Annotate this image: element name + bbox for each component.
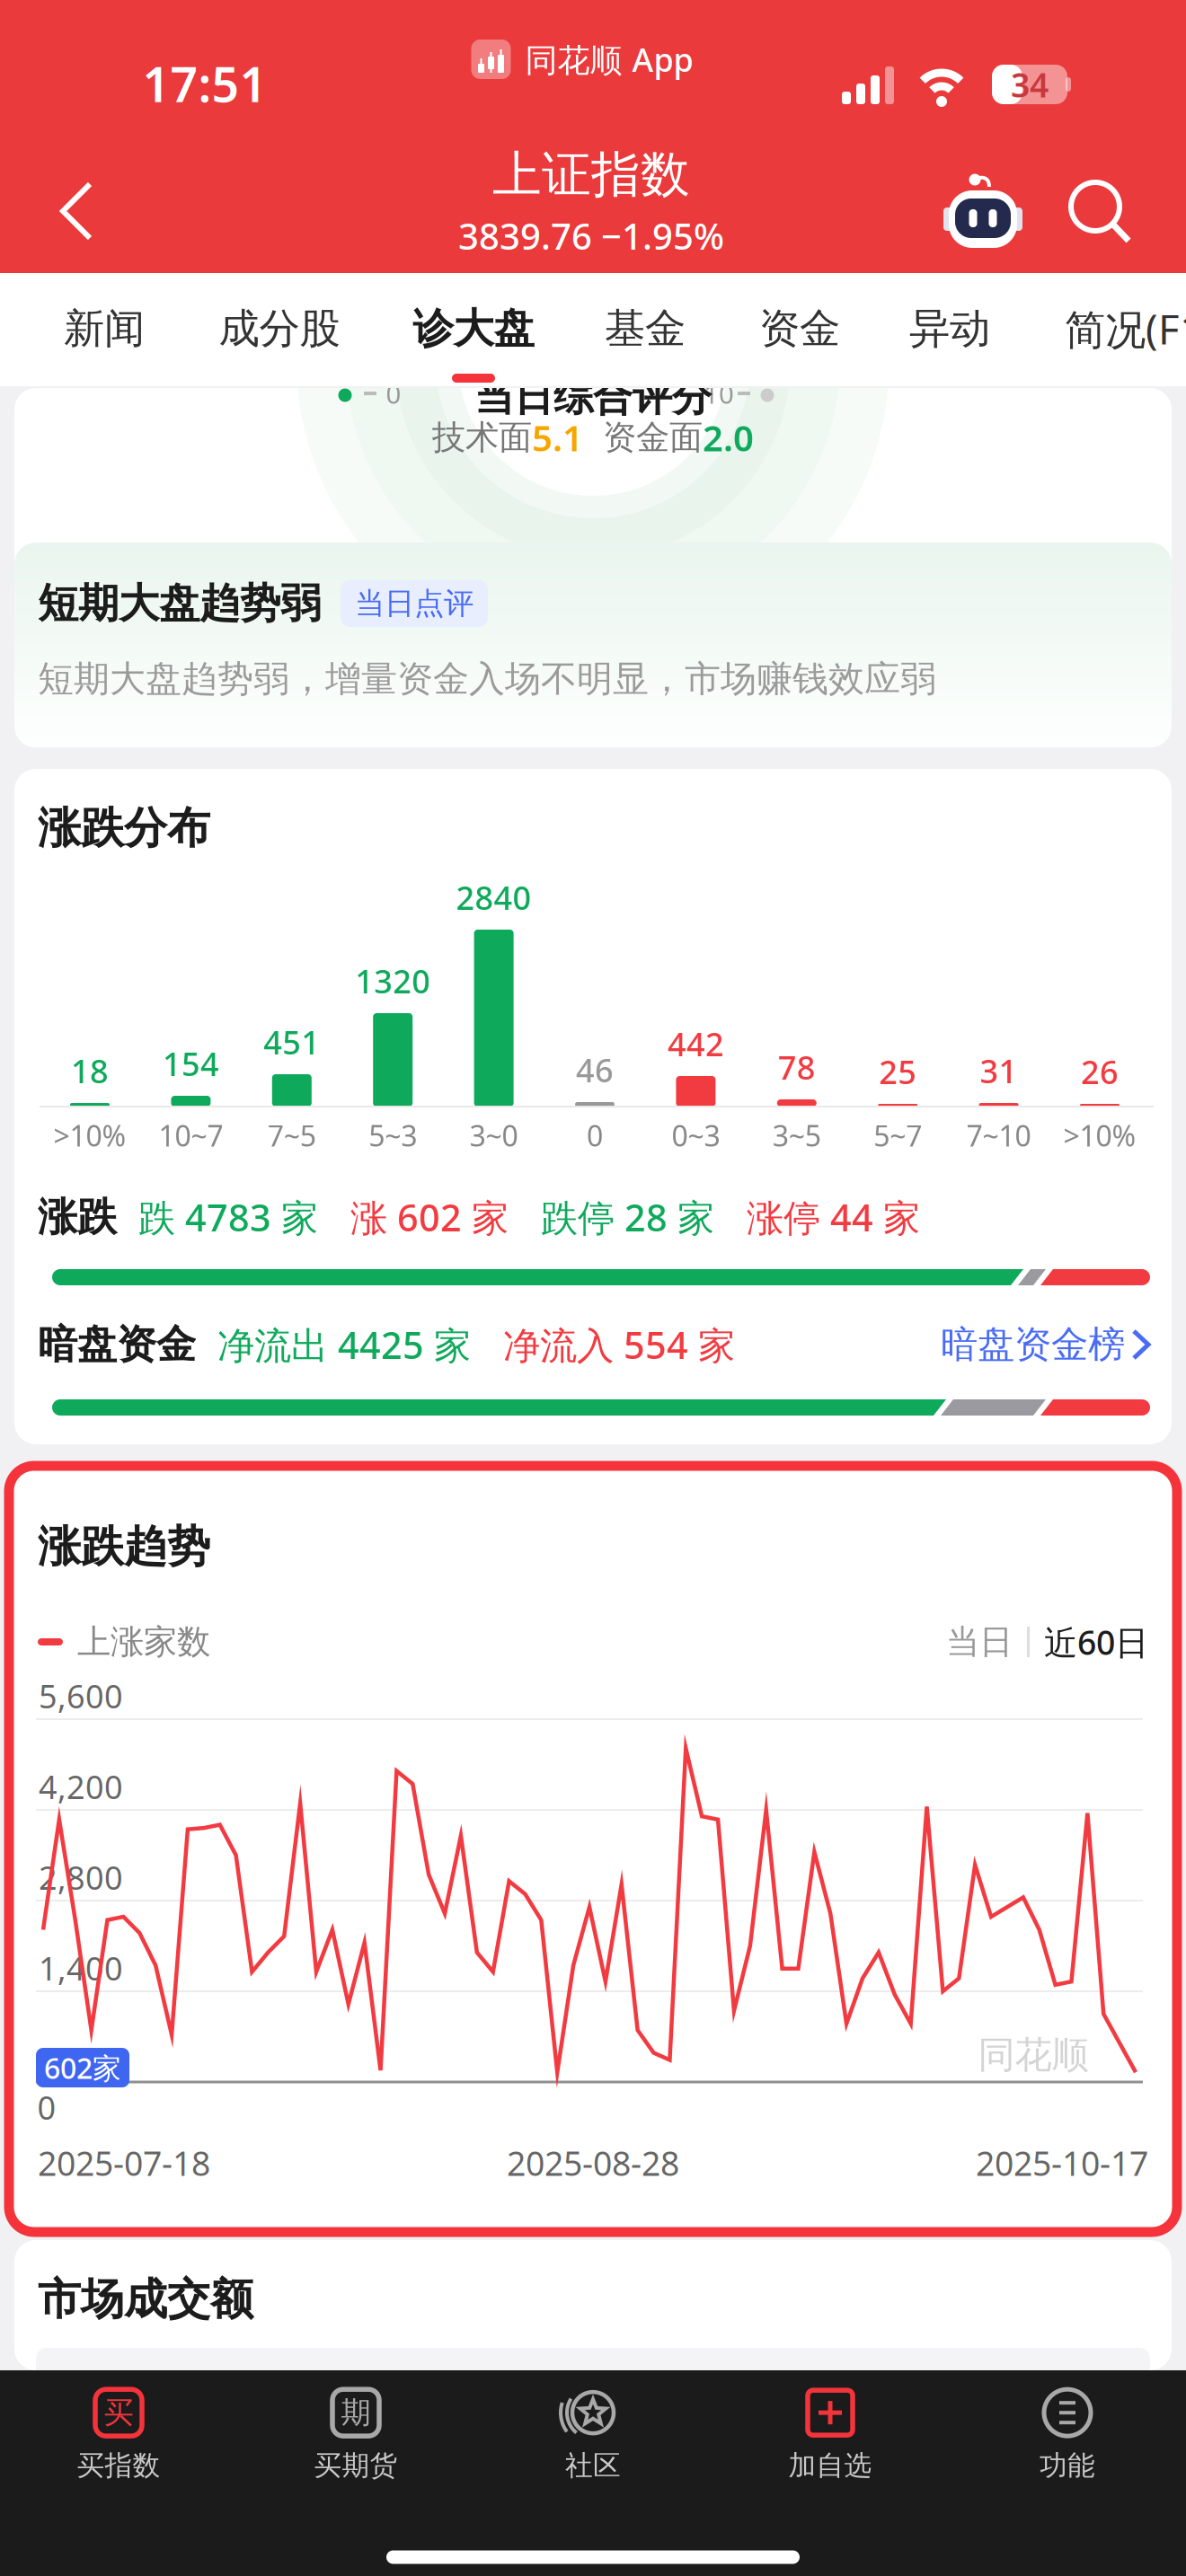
- staticText: 26: [1081, 1050, 1119, 1093]
- staticText: 净流出 4425 家: [196, 1320, 471, 1369]
- staticText: 3~5: [773, 1116, 821, 1154]
- button[interactable]: 期: [252, 2374, 459, 2496]
- staticText: 功能: [1040, 2449, 1095, 2482]
- staticText: 短期大盘趋势弱: [38, 579, 321, 629]
- staticText: 简况(F1: [1065, 302, 1186, 356]
- staticText: 1,400: [39, 1946, 123, 1989]
- staticText: 社区: [565, 2449, 621, 2482]
- staticText: 当日综合评分: [474, 373, 712, 421]
- staticText: 2,800: [39, 1856, 123, 1899]
- staticText: 市场成交额: [38, 2273, 253, 2326]
- staticText: 资金面: [583, 417, 703, 458]
- staticText: 上证指数: [492, 145, 690, 205]
- staticText: 17:51: [142, 52, 267, 115]
- button[interactable]: 当日: [946, 1621, 1013, 1663]
- staticText: 31: [980, 1049, 1018, 1092]
- button[interactable]: 加自选: [727, 2374, 934, 2496]
- staticText: 加自选: [788, 2449, 872, 2482]
- staticText: >10%: [1063, 1116, 1136, 1154]
- button[interactable]: 近60日: [1044, 1620, 1148, 1664]
- staticText: 7~5: [268, 1116, 316, 1154]
- staticText: 3839.76 −1.95%: [458, 212, 724, 260]
- staticText: 602家: [44, 2049, 121, 2087]
- staticText: 当日点评: [355, 585, 474, 622]
- button[interactable]: 暗盘资金榜: [941, 1322, 1148, 1367]
- staticText: 0: [386, 376, 401, 411]
- staticText: 10: [704, 376, 734, 411]
- staticText: 442: [667, 1022, 724, 1065]
- staticText: 暗盘资金榜: [941, 1322, 1125, 1367]
- staticText: 0: [587, 1116, 603, 1154]
- staticText: 买: [104, 2394, 133, 2431]
- staticText: 18: [71, 1049, 109, 1092]
- staticText: 新闻: [64, 304, 145, 354]
- staticText: 78: [778, 1046, 816, 1089]
- staticText: 净流入 554 家: [471, 1320, 735, 1369]
- staticText: 0: [37, 2086, 56, 2129]
- staticText: 2.0: [703, 414, 754, 461]
- button[interactable]: 买: [15, 2374, 222, 2496]
- staticText: 5.1: [532, 414, 583, 461]
- staticText: 451: [264, 1020, 320, 1063]
- staticText: 涨跌分布: [38, 802, 210, 855]
- staticText: 10~7: [158, 1116, 223, 1154]
- button[interactable]: 成分股: [219, 275, 340, 383]
- staticText: 2840: [456, 876, 532, 919]
- staticText: 25: [879, 1050, 917, 1093]
- staticText: 基金: [605, 304, 686, 354]
- staticText: 涨 602 家: [318, 1192, 509, 1242]
- button[interactable]: 当日点评: [341, 580, 488, 627]
- staticText: 技术面: [432, 417, 532, 458]
- staticText: 2025-08-28: [507, 2141, 679, 2185]
- button[interactable]: 基金: [605, 275, 686, 383]
- staticText: 期: [341, 2394, 371, 2431]
- staticText: 0~3: [672, 1116, 720, 1154]
- button[interactable]: 资金: [759, 275, 840, 383]
- staticText: 同花顺 App: [525, 38, 693, 81]
- staticText: 短期大盘趋势弱，增量资金入场不明显，市场赚钱效应弱: [38, 657, 936, 701]
- button[interactable]: 简况(F1: [1065, 275, 1186, 383]
- staticText: 近60日: [1044, 1620, 1148, 1664]
- staticText: 4,200: [39, 1765, 123, 1808]
- button[interactable]: AI助手: [943, 172, 1023, 253]
- staticText: 3~0: [470, 1116, 518, 1154]
- button[interactable]: 社区: [490, 2374, 696, 2496]
- staticText: 买期货: [314, 2449, 398, 2482]
- staticText: 154: [163, 1042, 219, 1085]
- staticText: 当日: [946, 1621, 1013, 1663]
- staticText: 34: [1011, 62, 1049, 107]
- staticText: 5~3: [369, 1116, 417, 1154]
- staticText: 5~7: [874, 1116, 922, 1154]
- button[interactable]: 功能: [964, 2374, 1171, 2496]
- staticText: 7~10: [966, 1116, 1031, 1154]
- button[interactable]: 返回: [36, 166, 117, 256]
- staticText: 涨停 44 家: [714, 1192, 920, 1242]
- staticText: 成分股: [219, 304, 340, 354]
- staticText: 跌停 28 家: [509, 1192, 714, 1242]
- staticText: 2025-10-17: [976, 2141, 1148, 2185]
- staticText: >10%: [53, 1116, 126, 1154]
- staticText: 异动: [909, 304, 990, 354]
- staticText: 同花顺: [978, 2032, 1089, 2078]
- staticText: 资金: [759, 304, 840, 354]
- staticText: 2025-07-18: [38, 2141, 210, 2185]
- staticText: 5,600: [39, 1674, 123, 1717]
- button[interactable]: 新闻: [64, 275, 145, 383]
- staticText: 涨跌: [38, 1193, 117, 1241]
- staticText: 买指数: [77, 2449, 160, 2482]
- staticText: 诊大盘: [413, 304, 534, 354]
- button[interactable]: 搜索: [1066, 177, 1137, 249]
- button[interactable]: 异动: [909, 275, 990, 383]
- button[interactable]: 诊大盘: [413, 275, 534, 383]
- staticText: 46: [576, 1048, 614, 1091]
- staticText: 上涨家数: [77, 1621, 210, 1663]
- staticText: 跌 4783 家: [117, 1192, 318, 1242]
- staticText: 1320: [355, 959, 431, 1002]
- staticText: 涨跌趋势: [38, 1520, 210, 1573]
- staticText: 暗盘资金: [38, 1320, 196, 1369]
